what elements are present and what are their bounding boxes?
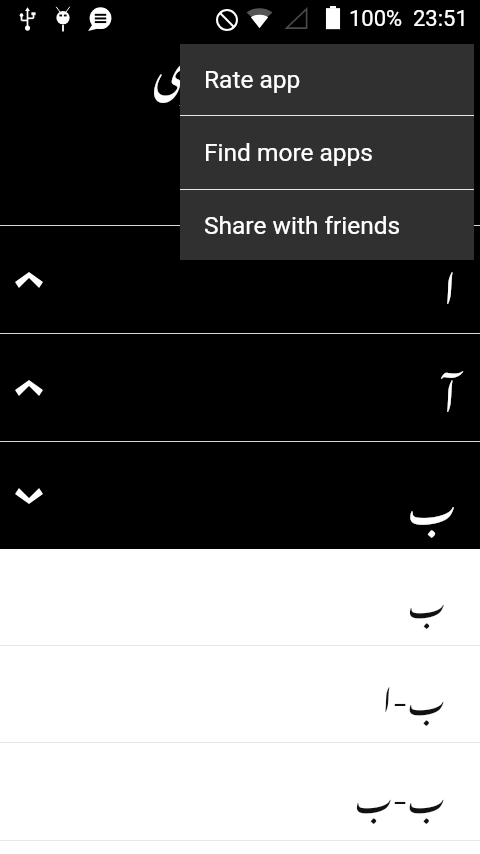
- staticText: Rate app: [204, 65, 301, 94]
- staticText: ا: [443, 230, 457, 333]
- button[interactable]: Collapse section: [0, 333, 480, 441]
- button[interactable]: ب: [0, 549, 480, 646]
- button[interactable]: Rate app: [180, 44, 474, 115]
- other: Messages: [87, 7, 113, 33]
- button[interactable]: Share with friends: [180, 190, 474, 260]
- button[interactable]: Collapse section: [0, 225, 480, 333]
- staticText: ب-ب: [355, 752, 446, 832]
- other: Collapse section: [15, 272, 43, 288]
- button[interactable]: Expand section: [0, 441, 480, 549]
- other: Do not disturb: [215, 8, 239, 32]
- other: USB connected: [20, 7, 35, 31]
- staticText: ب-ا: [382, 654, 446, 734]
- staticText: 100%: [349, 6, 403, 32]
- other: Expand section: [15, 488, 43, 504]
- other: Developer options: [54, 6, 72, 32]
- other: Battery 100 percent: [325, 5, 341, 31]
- staticText: 23:51: [413, 6, 468, 32]
- staticText: اردو لغت انگریزی ڈکشنری: [153, 44, 474, 113]
- button[interactable]: ب-ا: [0, 646, 480, 743]
- staticText: ب: [408, 446, 457, 549]
- other: Wi-Fi: [246, 8, 273, 29]
- staticText: ب: [408, 557, 446, 637]
- other: Collapse section: [15, 380, 43, 396]
- staticText: Find more apps: [204, 138, 374, 167]
- staticText: آ: [443, 338, 457, 441]
- staticText: Share with friends: [204, 211, 401, 240]
- button[interactable]: Find more apps: [180, 116, 474, 189]
- other: Mobile signal: [285, 7, 308, 30]
- button[interactable]: اردو لغت انگریزی ڈکشنری: [0, 44, 480, 225]
- button[interactable]: ب-ب: [0, 743, 480, 854]
